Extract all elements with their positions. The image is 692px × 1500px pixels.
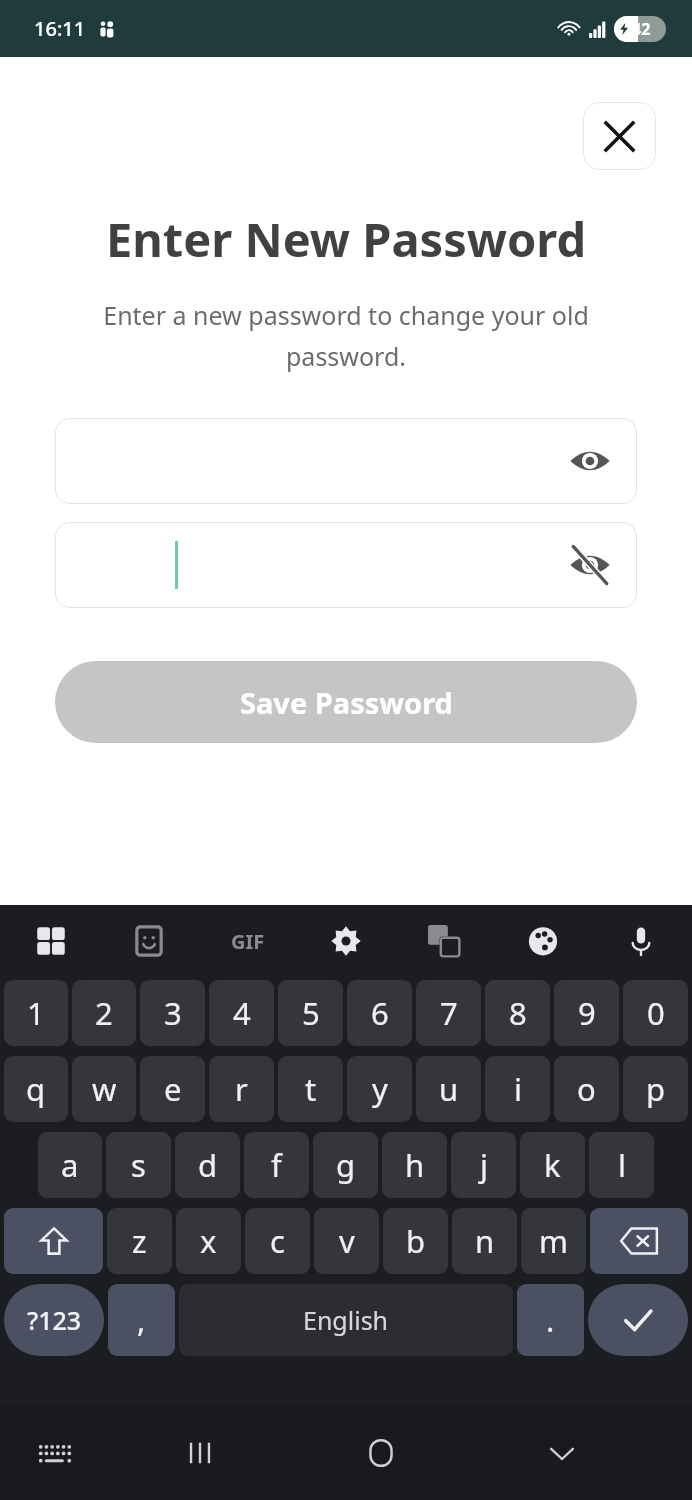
button[interactable]: 4	[209, 980, 274, 1046]
staticText: i	[514, 1068, 522, 1110]
staticText: ?123	[27, 1303, 82, 1337]
button[interactable]: f	[244, 1132, 309, 1198]
button[interactable]: m	[521, 1208, 586, 1274]
button[interactable]: h	[382, 1132, 447, 1198]
staticText: y	[372, 1068, 388, 1110]
staticText: x	[200, 1220, 217, 1262]
button[interactable]: b	[383, 1208, 448, 1274]
button[interactable]: Backspace	[590, 1208, 688, 1274]
staticText: 2	[95, 992, 113, 1034]
staticText: l	[618, 1144, 626, 1186]
button[interactable]: d	[175, 1132, 240, 1198]
button[interactable]: 6	[347, 980, 412, 1046]
button[interactable]: Menu	[24, 914, 78, 968]
staticText: q	[26, 1068, 46, 1110]
button[interactable]: Shift	[4, 1208, 103, 1274]
staticText: 7	[440, 992, 458, 1034]
staticText: k	[544, 1144, 561, 1186]
staticText: u	[439, 1068, 459, 1110]
staticText: 3	[164, 992, 182, 1034]
staticText: 9	[578, 992, 596, 1034]
button[interactable]: Hide keyboard	[471, 1405, 652, 1500]
staticText: j	[480, 1144, 488, 1186]
button[interactable]: ?123	[4, 1284, 104, 1356]
button[interactable]: j	[451, 1132, 516, 1198]
button[interactable]: Themes	[516, 914, 570, 968]
staticText: w	[92, 1068, 117, 1110]
staticText: English	[303, 1303, 389, 1337]
button[interactable]: Close	[583, 102, 656, 170]
button[interactable]: t	[278, 1056, 343, 1122]
button[interactable]: 3	[140, 980, 205, 1046]
staticText: Save Password	[240, 683, 453, 722]
button[interactable]: Switch keyboard	[0, 1405, 110, 1500]
button[interactable]: 1	[4, 980, 68, 1046]
button[interactable]: c	[245, 1208, 310, 1274]
button[interactable]: s	[106, 1132, 171, 1198]
staticText: c	[270, 1220, 285, 1262]
button[interactable]: GIF	[221, 914, 275, 968]
button[interactable]: Translate	[417, 914, 471, 968]
button[interactable]: Stickers	[122, 914, 176, 968]
staticText: a	[61, 1144, 79, 1186]
staticText: r	[235, 1068, 248, 1110]
button[interactable]: Enter	[588, 1284, 688, 1356]
staticText: f	[271, 1144, 282, 1186]
staticText: 1	[27, 992, 45, 1034]
button[interactable]: v	[314, 1208, 379, 1274]
button[interactable]: Save Password	[55, 661, 637, 743]
button[interactable]: Show password	[55, 418, 637, 504]
button[interactable]: Settings	[319, 914, 373, 968]
button[interactable]: English	[179, 1284, 513, 1356]
staticText: 0	[647, 992, 665, 1034]
button[interactable]: 2	[72, 980, 136, 1046]
button[interactable]: 5	[278, 980, 343, 1046]
button[interactable]: 9	[554, 980, 619, 1046]
button[interactable]: Hide password	[55, 522, 637, 608]
button[interactable]: Voice input	[614, 914, 668, 968]
staticText: Enter a new password to change your old …	[72, 298, 620, 374]
button[interactable]: r	[209, 1056, 274, 1122]
button[interactable]: i	[485, 1056, 550, 1122]
button[interactable]: Home	[290, 1405, 471, 1500]
staticText: .	[546, 1299, 555, 1341]
button[interactable]: Hide password	[564, 539, 616, 591]
button[interactable]: a	[38, 1132, 102, 1198]
button[interactable]: p	[623, 1056, 688, 1122]
button[interactable]: n	[452, 1208, 517, 1274]
button[interactable]: o	[554, 1056, 619, 1122]
button[interactable]: x	[176, 1208, 241, 1274]
staticText: GIF	[231, 928, 265, 955]
staticText: m	[539, 1220, 568, 1262]
staticText: 8	[509, 992, 527, 1034]
staticText: o	[577, 1068, 596, 1110]
staticText: e	[164, 1068, 182, 1110]
button[interactable]: e	[140, 1056, 205, 1122]
staticText: 42	[632, 18, 651, 40]
staticText: d	[198, 1144, 218, 1186]
button[interactable]: .	[517, 1284, 584, 1356]
staticText: h	[405, 1144, 425, 1186]
button[interactable]: z	[107, 1208, 172, 1274]
button[interactable]: ,	[108, 1284, 175, 1356]
button[interactable]: Recents	[110, 1405, 290, 1500]
staticText: n	[475, 1220, 495, 1262]
button[interactable]: u	[416, 1056, 481, 1122]
button[interactable]: 7	[416, 980, 481, 1046]
button[interactable]: 8	[485, 980, 550, 1046]
button[interactable]: 0	[623, 980, 688, 1046]
staticText: Enter New Password	[20, 207, 672, 271]
button[interactable]: q	[4, 1056, 68, 1122]
button[interactable]: y	[347, 1056, 412, 1122]
staticText: b	[406, 1220, 426, 1262]
button[interactable]: w	[72, 1056, 136, 1122]
staticText: 16:11	[34, 15, 86, 42]
button[interactable]: g	[313, 1132, 378, 1198]
staticText: v	[339, 1220, 355, 1262]
button[interactable]: k	[520, 1132, 585, 1198]
staticText: g	[336, 1144, 356, 1186]
staticText: s	[131, 1144, 146, 1186]
button[interactable]: Show password	[564, 435, 616, 487]
staticText: 6	[371, 992, 389, 1034]
button[interactable]: l	[589, 1132, 654, 1198]
